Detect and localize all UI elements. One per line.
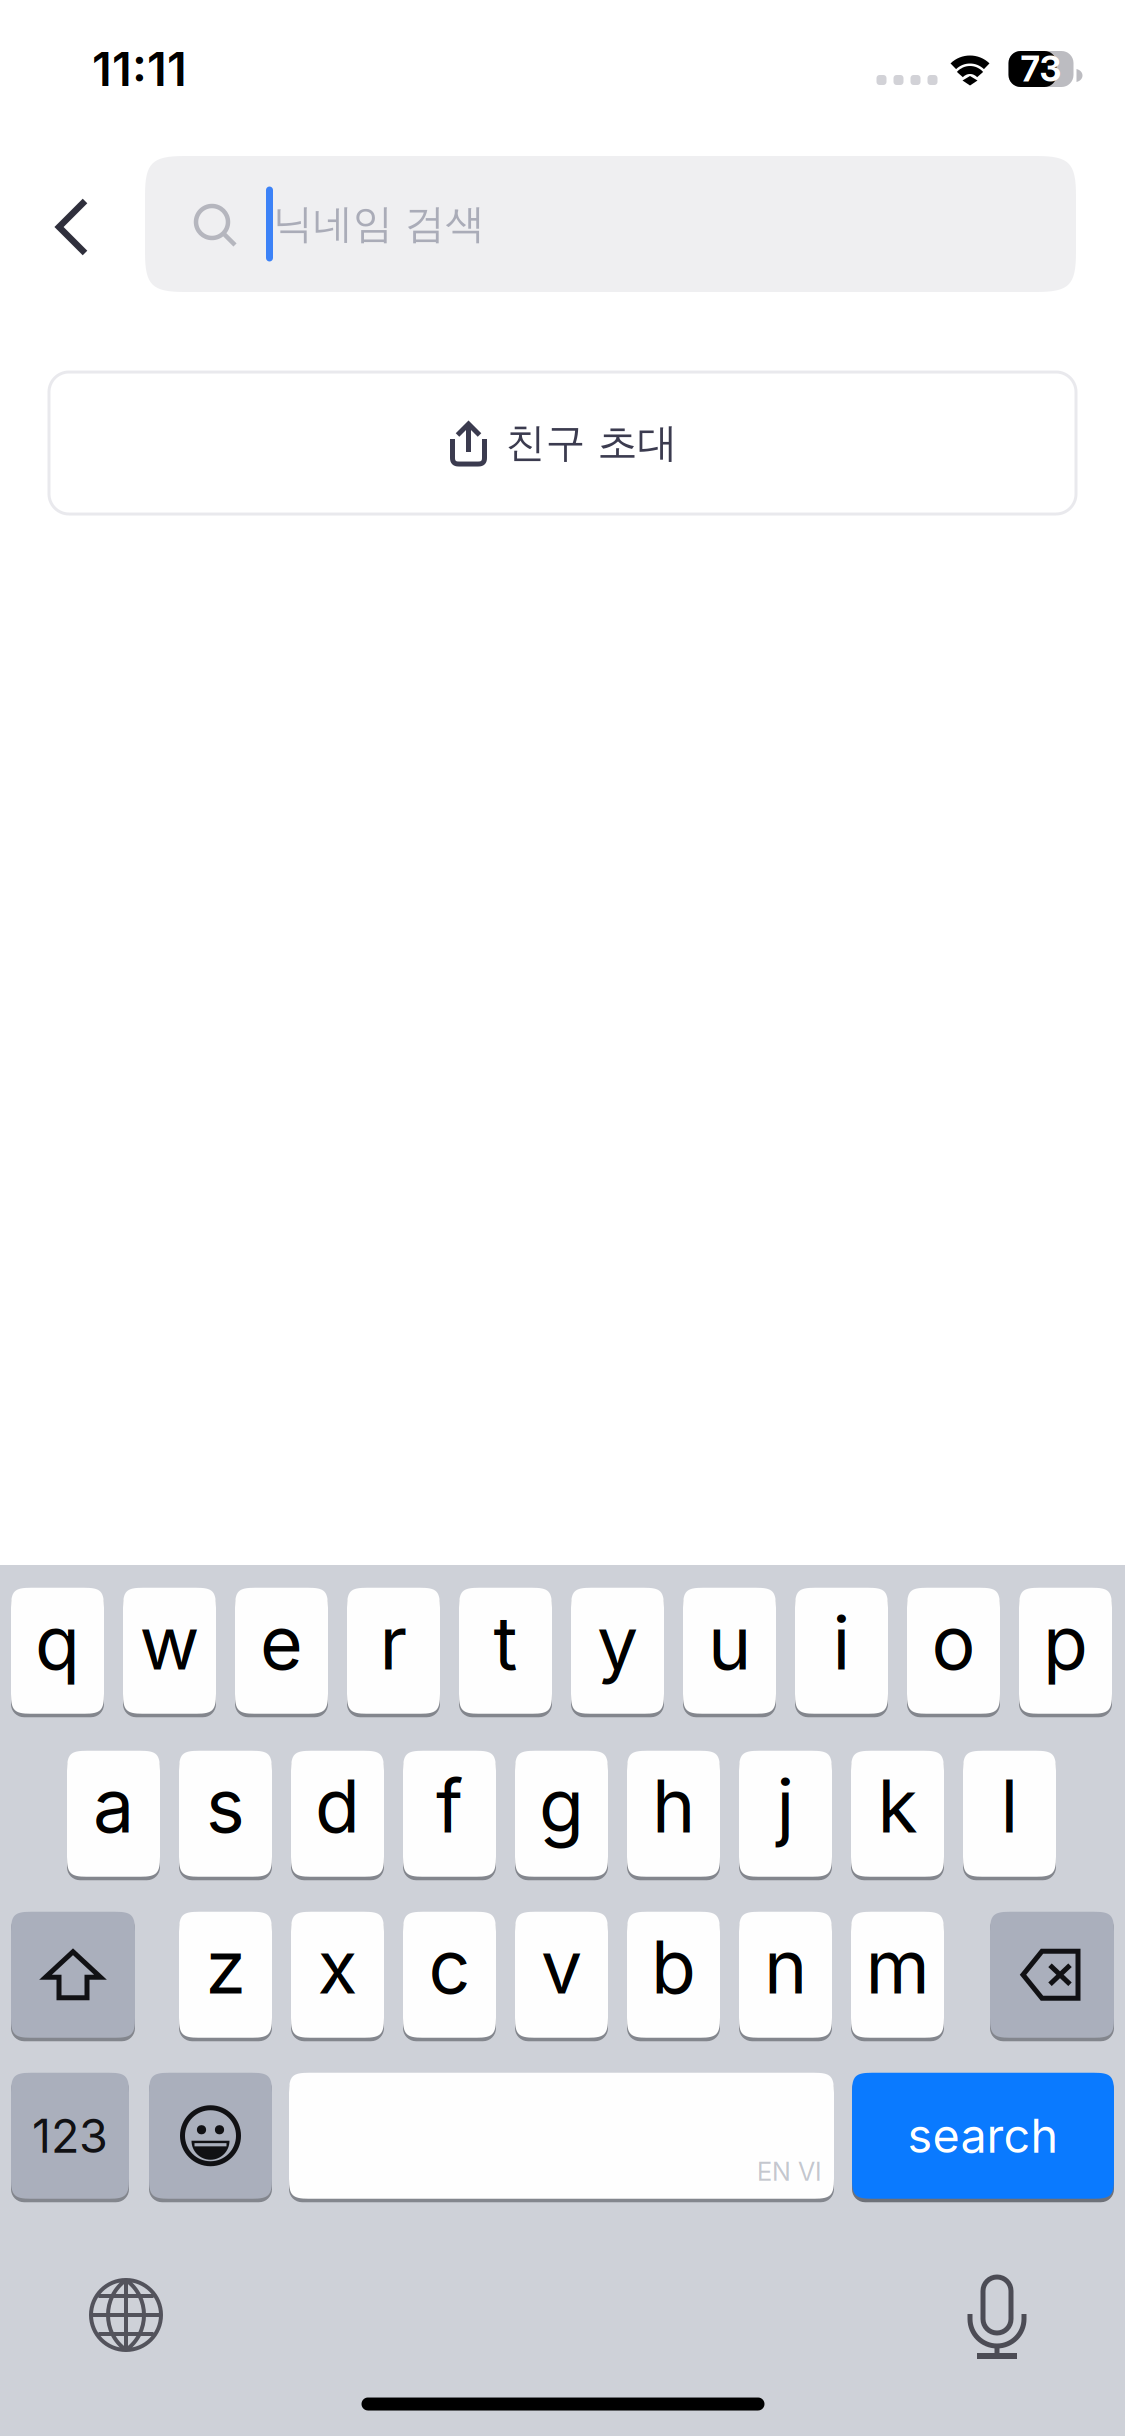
button[interactable]: 친구 초대 — [49, 372, 1076, 514]
staticText: 73 — [1020, 48, 1061, 90]
button[interactable]: h — [627, 1749, 720, 1878]
button[interactable]: o — [907, 1586, 1000, 1715]
button[interactable]: k — [851, 1749, 944, 1878]
staticText: 11:11 — [92, 41, 187, 97]
staticText: 닉네임 검색 — [273, 199, 485, 249]
staticText: search — [907, 2107, 1058, 2164]
button[interactable]: Dictation — [966, 2272, 1028, 2358]
button[interactable]: r — [347, 1586, 440, 1715]
staticText: l — [1000, 1761, 1018, 1850]
button[interactable]: t — [459, 1586, 552, 1715]
staticText: r — [379, 1598, 407, 1687]
staticText: EN VI — [757, 2156, 822, 2187]
button[interactable]: Shift — [11, 1910, 135, 2039]
button[interactable]: m — [851, 1910, 944, 2039]
staticText: c — [428, 1922, 470, 2011]
button[interactable]: e — [235, 1586, 328, 1715]
staticText: v — [541, 1922, 582, 2011]
staticText: z — [205, 1922, 245, 2011]
button[interactable]: Emoji — [149, 2071, 272, 2200]
button[interactable]: g — [515, 1749, 608, 1878]
button[interactable]: 닉네임 검색 — [145, 156, 1076, 292]
staticText: w — [139, 1598, 199, 1687]
button[interactable]: u — [683, 1586, 776, 1715]
staticText: e — [260, 1598, 303, 1687]
staticText: y — [597, 1598, 638, 1687]
staticText: a — [93, 1761, 134, 1850]
button[interactable]: Delete — [990, 1910, 1114, 2039]
button[interactable]: i — [795, 1586, 888, 1715]
staticText: s — [206, 1761, 245, 1850]
staticText: x — [317, 1922, 357, 2011]
staticText: j — [776, 1761, 794, 1850]
button[interactable]: f — [403, 1749, 496, 1878]
button[interactable]: n — [739, 1910, 832, 2039]
staticText: t — [493, 1598, 517, 1687]
button[interactable]: Next keyboard — [86, 2275, 166, 2355]
staticText: p — [1043, 1598, 1088, 1687]
staticText: g — [539, 1761, 584, 1850]
staticText: u — [708, 1598, 751, 1687]
button[interactable]: b — [627, 1910, 720, 2039]
staticText: o — [931, 1598, 975, 1687]
staticText: m — [865, 1922, 929, 2011]
button[interactable]: z — [179, 1910, 272, 2039]
button[interactable]: Numbers — [11, 2071, 129, 2200]
button[interactable]: j — [739, 1749, 832, 1878]
staticText: i — [832, 1598, 850, 1687]
button[interactable]: p — [1019, 1586, 1112, 1715]
button[interactable]: x — [291, 1910, 384, 2039]
staticText: n — [764, 1922, 807, 2011]
staticText: b — [651, 1922, 696, 2011]
button[interactable]: Space — [289, 2071, 834, 2200]
button[interactable]: c — [403, 1910, 496, 2039]
button[interactable]: l — [963, 1749, 1056, 1878]
button[interactable]: Search — [852, 2071, 1114, 2200]
button[interactable]: v — [515, 1910, 608, 2039]
button[interactable]: a — [67, 1749, 160, 1878]
button[interactable]: Back — [0, 159, 145, 295]
staticText: k — [877, 1761, 917, 1850]
button[interactable]: d — [291, 1749, 384, 1878]
staticText: 123 — [32, 2107, 108, 2164]
button[interactable]: s — [179, 1749, 272, 1878]
staticText: 친구 초대 — [505, 418, 677, 468]
button[interactable]: y — [571, 1586, 664, 1715]
staticText: h — [652, 1761, 695, 1850]
staticText: q — [35, 1598, 80, 1687]
staticText: f — [436, 1761, 463, 1850]
button[interactable]: q — [11, 1586, 104, 1715]
button[interactable]: w — [123, 1586, 216, 1715]
staticText: d — [315, 1761, 360, 1850]
